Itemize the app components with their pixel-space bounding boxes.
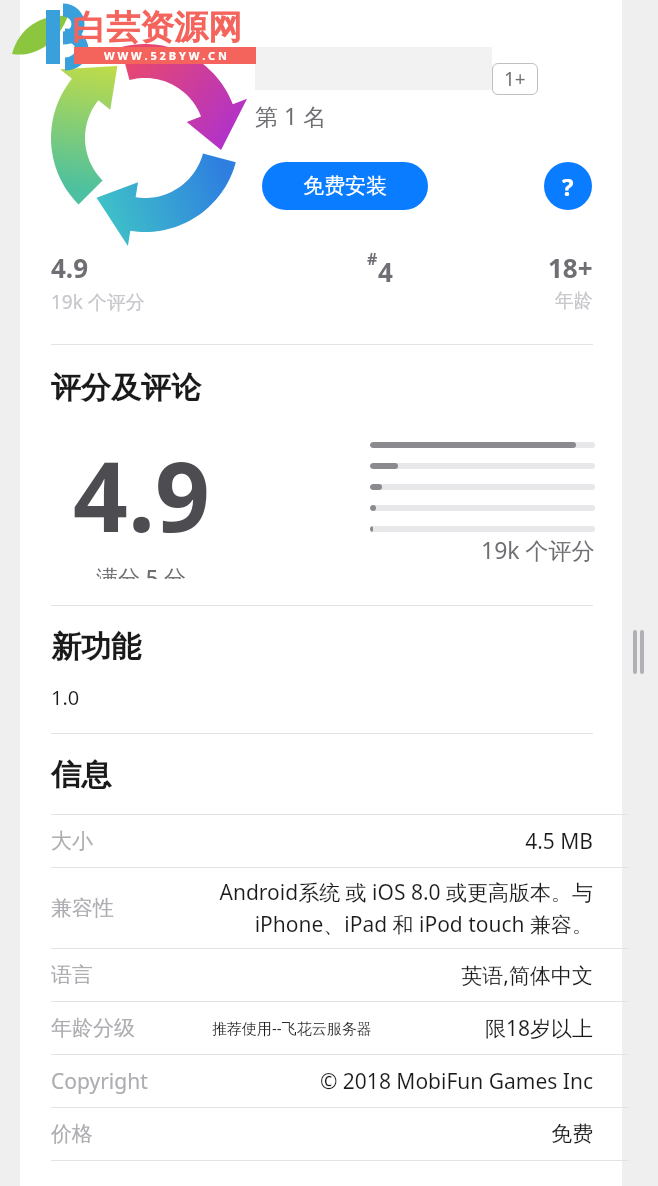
staticText: © 2018 MobiFun Games Inc [319,1067,593,1096]
staticText: 1.0 [51,684,80,711]
staticText: 免费安装 [303,173,387,199]
staticText: 4.9 [73,429,210,560]
staticText: 英语,简体中文 [461,961,593,990]
staticText: 新功能 [51,628,141,666]
staticText: Copyright [51,1067,148,1096]
staticText: 白芸资源网 [72,6,242,49]
button[interactable]: 免费安装 [262,162,428,210]
button[interactable]: 价格 [51,1108,593,1160]
button[interactable]: Copyright [51,1055,593,1107]
staticText: 大小 [51,828,93,854]
staticText: 19k 个评分 [481,534,595,565]
staticText: ? [562,170,574,203]
staticText: 19k 个评分 [51,289,145,315]
staticText: 年龄 [555,289,593,313]
button[interactable]: Age rating 1+ [492,63,538,95]
button[interactable]: Help [544,162,592,210]
staticText: 限18岁以上 [484,1014,593,1043]
staticText: 免费 [551,1121,593,1147]
button[interactable]: 兼容性 [51,868,593,948]
staticText: Android系统 或 iOS 8.0 或更高版本。与 iPhone、iPad … [219,878,593,938]
staticText: # [367,248,378,270]
staticText: 1+ [504,66,526,92]
staticText: 信息 [51,756,111,794]
button[interactable]: 大小 [51,815,593,867]
staticText: 满分 5 分 [96,562,187,579]
staticText: W W W . 5 2 B Y W . C N [104,48,227,63]
staticText: 推荐使用--飞花云服务器 [212,1018,372,1038]
button[interactable]: 语言 [51,949,593,1001]
staticText: 年龄分级 [51,1015,135,1041]
staticText: 兼容性 [51,895,114,921]
staticText: 18+ [548,250,593,285]
staticText: 4 [378,254,393,289]
staticText: 语言 [51,962,93,988]
staticText: 评分及评论 [51,369,201,407]
staticText: 价格 [51,1121,93,1147]
staticText: 4.5 MB [525,827,593,856]
staticText: 4.9 [51,250,89,285]
button[interactable]: 年龄分级 [51,1002,593,1054]
staticText: 第 1 名 [255,100,327,131]
